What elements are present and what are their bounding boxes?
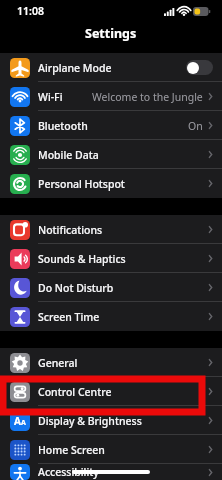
- staticText: A: [21, 418, 26, 428]
- staticText: Settings: [85, 25, 137, 42]
- staticText: Control Centre: [38, 385, 208, 399]
- button[interactable]: Bluetooth: [0, 111, 222, 140]
- staticText: Accessibility: [38, 465, 208, 479]
- button[interactable]: Airplane Mode toggle: [186, 60, 213, 75]
- staticText: Welcome to the Jungle: [92, 90, 203, 104]
- staticText: Notifications: [38, 223, 208, 237]
- staticText: On: [188, 119, 203, 133]
- staticText: Do Not Disturb: [38, 281, 208, 295]
- button[interactable]: Wi-Fi: [0, 82, 222, 111]
- button[interactable]: Accessibility: [0, 464, 222, 480]
- button[interactable]: Screen Time: [0, 302, 222, 331]
- staticText: Personal Hotspot: [38, 177, 208, 191]
- button[interactable]: Airplane Mode: [0, 53, 222, 82]
- staticText: Display & Brightness: [38, 414, 208, 428]
- staticText: Wi-Fi: [38, 90, 92, 104]
- staticText: A: [14, 414, 21, 428]
- button[interactable]: A: [0, 406, 222, 435]
- button[interactable]: Sounds & Haptics: [0, 244, 222, 273]
- button[interactable]: Notifications: [0, 215, 222, 244]
- staticText: Airplane Mode: [38, 61, 186, 75]
- staticText: 11:08: [17, 4, 44, 18]
- staticText: Home Screen: [38, 443, 208, 457]
- button[interactable]: Home Screen: [0, 435, 222, 464]
- button[interactable]: Mobile Data: [0, 140, 222, 169]
- button[interactable]: General: [0, 348, 222, 377]
- staticText: Bluetooth: [38, 119, 188, 133]
- staticText: Mobile Data: [38, 148, 208, 162]
- staticText: Screen Time: [38, 310, 208, 324]
- button[interactable]: Do Not Disturb: [0, 273, 222, 302]
- staticText: General: [38, 356, 208, 370]
- button[interactable]: Personal Hotspot: [0, 169, 222, 198]
- staticText: Sounds & Haptics: [38, 252, 208, 266]
- button[interactable]: Control Centre: [0, 377, 222, 406]
